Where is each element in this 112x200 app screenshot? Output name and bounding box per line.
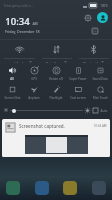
button[interactable]: Data Save xyxy=(38,41,75,63)
button[interactable]: Settings xyxy=(82,12,93,23)
staticText: GPS xyxy=(31,77,37,81)
staticText: Cast screen xyxy=(70,96,86,100)
button[interactable]: Bluetooth xyxy=(75,41,112,63)
button[interactable]: Screen Shot xyxy=(1,85,23,100)
staticText: AM xyxy=(32,21,38,26)
button[interactable]: Mini Touch xyxy=(89,85,111,100)
button[interactable]: All xyxy=(1,66,23,81)
button[interactable]: Brightness xyxy=(10,107,83,114)
button[interactable]: Airplane xyxy=(23,85,45,100)
staticText: Flashlight xyxy=(49,96,63,100)
staticText: 10:34 AM xyxy=(93,124,107,128)
button[interactable]: GPS xyxy=(23,66,45,81)
button[interactable]: oneshi1 obm xyxy=(0,41,38,63)
staticText: Data Save xyxy=(46,61,62,63)
button[interactable]: Auto xyxy=(93,108,108,113)
staticText: oneshi1 obm xyxy=(6,61,27,63)
staticText: Rotate off xyxy=(49,77,63,81)
staticText: Friday, December 18 xyxy=(5,29,40,34)
staticText: Screenshot captured. xyxy=(19,123,93,129)
button[interactable]: Super Power xyxy=(67,66,89,81)
staticText: All xyxy=(10,77,14,81)
staticText: Emergency calls o... xyxy=(4,4,34,8)
staticText: Saved Data xyxy=(92,77,108,81)
staticText: Auto xyxy=(100,109,108,113)
staticText: 10:34 xyxy=(5,15,30,28)
staticText: Mini Touch xyxy=(93,96,108,100)
button[interactable]: Saved Data xyxy=(89,66,111,81)
button[interactable]: Flashlight xyxy=(45,85,67,100)
button[interactable]: Rotate off xyxy=(45,66,67,81)
staticText: Bluetooth xyxy=(83,61,99,63)
button[interactable]: User profile xyxy=(97,12,108,23)
staticText: Screen Shot xyxy=(4,96,21,100)
button[interactable]: Cast screen xyxy=(67,85,89,100)
staticText: 100% xyxy=(100,4,108,8)
button[interactable]: Edit tiles xyxy=(90,26,100,36)
staticText: Super Power xyxy=(69,77,87,81)
staticText: Airplane xyxy=(28,96,40,100)
button[interactable]: Screenshot captured. xyxy=(2,119,110,157)
